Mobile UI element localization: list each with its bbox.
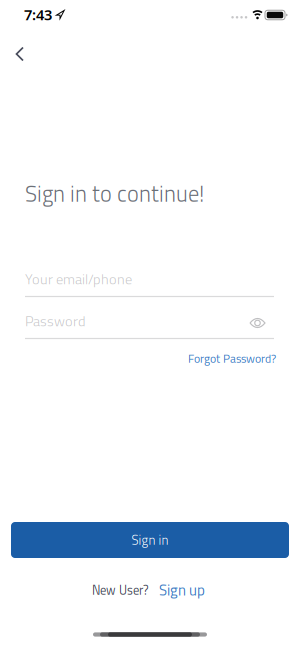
button[interactable]: Sign in	[11, 522, 289, 558]
staticText: New User?	[92, 580, 149, 600]
staticText: Your email/phone	[25, 268, 132, 290]
button[interactable]: Back	[7, 38, 32, 69]
staticText: 7:43	[24, 5, 52, 24]
button[interactable]: Show password	[245, 312, 270, 333]
staticText: Sign in to continue!	[25, 176, 204, 211]
staticText: Sign in	[131, 530, 168, 550]
button[interactable]: Sign up	[159, 579, 205, 601]
staticText: Password	[25, 310, 86, 332]
button[interactable]: Forgot Password?	[185, 347, 279, 370]
staticText: Forgot Password?	[188, 350, 276, 367]
staticText: Sign up	[159, 579, 205, 601]
